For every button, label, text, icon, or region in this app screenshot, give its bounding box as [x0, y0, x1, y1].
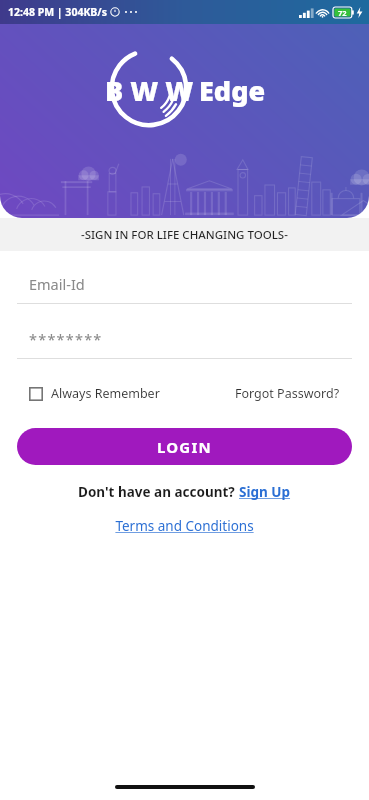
staticText: B W W	[105, 72, 194, 109]
staticText: Email-Id	[29, 274, 85, 294]
staticText: Always Remember	[51, 385, 160, 402]
staticText: Sign Up	[239, 483, 291, 501]
staticText: Terms and Conditions	[115, 517, 254, 535]
button[interactable]: Always Remember	[29, 385, 160, 402]
staticText: LOGIN	[157, 437, 212, 457]
staticText: Edge	[199, 72, 266, 109]
staticText: Forgot Password?	[235, 385, 340, 402]
button[interactable]: ********	[17, 326, 352, 359]
button[interactable]: Sign Up	[239, 483, 291, 501]
staticText: -SIGN IN FOR LIFE CHANGING TOOLS-	[81, 227, 288, 243]
button[interactable]: Forgot Password?	[235, 385, 340, 402]
button[interactable]: Email-Id	[17, 271, 352, 304]
staticText: ********	[29, 329, 103, 349]
staticText: 12:48 PM | 304KB/s	[8, 5, 107, 19]
staticText: Don't have an account?	[78, 483, 239, 501]
button[interactable]: LOGIN	[17, 428, 352, 465]
staticText: 72	[338, 8, 347, 18]
button[interactable]: Terms and Conditions	[115, 517, 254, 535]
